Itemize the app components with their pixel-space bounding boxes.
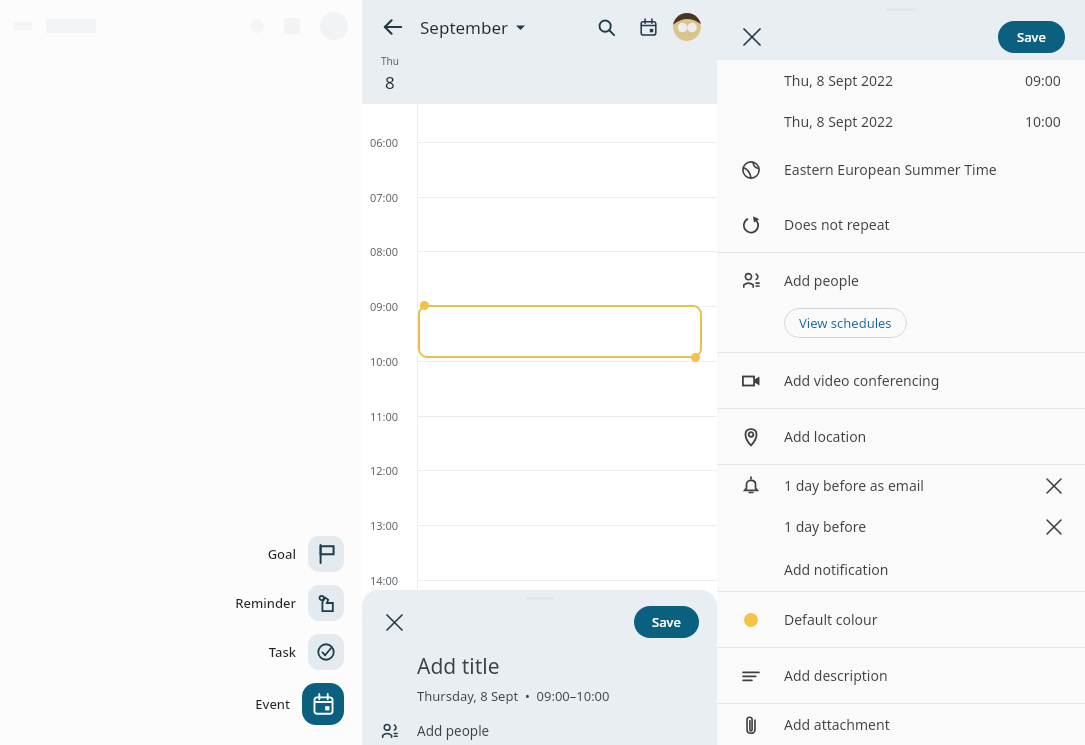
staticText: 08:00 <box>370 244 399 259</box>
button[interactable]: Remove notification <box>1037 469 1071 503</box>
staticText: 1 day before as email <box>784 476 924 495</box>
staticText: Thu, 8 Sept 2022 <box>784 112 894 131</box>
staticText: Add attachment <box>784 715 890 734</box>
staticText: Default colour <box>784 610 878 629</box>
button[interactable]: 1 day before as email <box>717 465 1085 506</box>
button[interactable]: Add video conferencing <box>717 353 1085 408</box>
staticText: Does not repeat <box>784 215 890 234</box>
button[interactable]: September <box>420 16 525 39</box>
button[interactable]: Event <box>255 683 344 725</box>
button[interactable]: Back <box>378 12 408 42</box>
staticText: Add notification <box>784 560 889 579</box>
button[interactable]: Does not repeat <box>717 197 1085 252</box>
staticText: 12:00 <box>370 463 399 478</box>
button[interactable]: Add people <box>717 253 1085 308</box>
staticText: Add title <box>417 652 500 681</box>
staticText: 13:00 <box>370 518 399 533</box>
staticText: Add location <box>784 427 867 446</box>
staticText: 11:00 <box>370 409 399 424</box>
button[interactable]: Task <box>268 634 344 670</box>
staticText: 10:00 <box>1025 112 1061 131</box>
button[interactable]: Add location <box>717 409 1085 464</box>
button[interactable]: View schedules <box>784 308 907 338</box>
button[interactable]: Add people <box>362 717 717 745</box>
staticText: Add people <box>417 722 490 740</box>
staticText: 1 day before <box>784 517 867 536</box>
button[interactable]: Eastern European Summer Time <box>717 142 1085 197</box>
button[interactable]: Remove notification <box>1037 510 1071 544</box>
button[interactable]: 1 day before <box>717 506 1085 547</box>
staticText: 09:00 <box>1025 71 1061 90</box>
button[interactable]: Add attachment <box>717 704 1085 745</box>
staticText: Task <box>268 643 296 661</box>
staticText: Add description <box>784 666 888 685</box>
staticText: 14:00 <box>370 573 399 588</box>
button[interactable]: Goal <box>267 536 344 572</box>
button[interactable]: Close <box>737 22 767 52</box>
staticText: 09:00 <box>370 299 399 314</box>
button[interactable]: Add description <box>717 648 1085 703</box>
button[interactable]: Close <box>380 608 408 636</box>
staticText: 06:00 <box>370 135 399 150</box>
staticText: 8 <box>385 71 395 94</box>
staticText: Add people <box>784 271 859 290</box>
staticText: Add video conferencing <box>784 371 940 390</box>
staticText: Save <box>652 613 681 631</box>
button[interactable]: Thu, 8 Sept 2022 <box>717 60 1085 101</box>
button[interactable]: Save <box>634 606 699 638</box>
staticText: Thu, 8 Sept 2022 <box>784 71 894 90</box>
button[interactable]: Today <box>633 12 663 42</box>
staticText: 07:00 <box>370 190 399 205</box>
button[interactable] <box>418 305 702 358</box>
staticText: Goal <box>267 545 296 563</box>
staticText: Event <box>255 695 290 713</box>
button[interactable]: Reminder <box>235 585 344 621</box>
button[interactable]: Thu, 8 Sept 2022 <box>717 101 1085 142</box>
staticText: Thursday, 8 Sept • 09:00–10:00 <box>417 687 610 705</box>
staticText: View schedules <box>799 314 892 332</box>
staticText: September <box>420 16 509 39</box>
staticText: Reminder <box>235 594 296 612</box>
button[interactable]: Add notification <box>717 547 1085 591</box>
button[interactable]: Account <box>673 13 701 41</box>
button[interactable]: Save <box>998 21 1065 53</box>
staticText: Save <box>1017 28 1046 46</box>
staticText: Eastern European Summer Time <box>784 160 997 179</box>
staticText: 10:00 <box>370 354 399 369</box>
button[interactable]: Search <box>591 12 621 42</box>
button[interactable]: Default colour <box>717 592 1085 647</box>
staticText: Thu <box>381 54 399 68</box>
